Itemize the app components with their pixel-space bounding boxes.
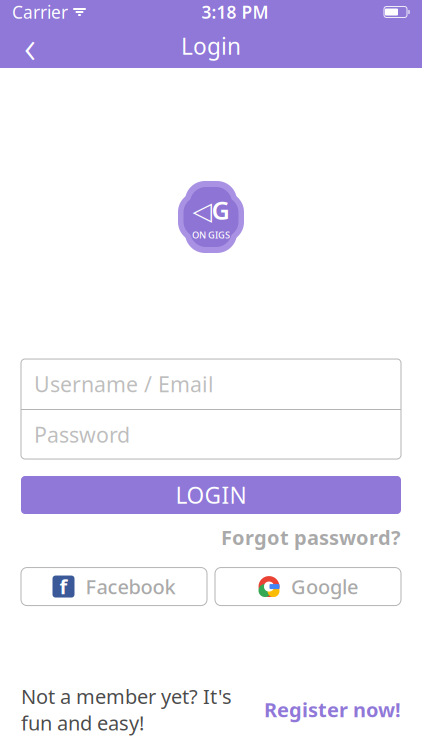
staticText: Forgot password? bbox=[221, 524, 401, 551]
staticText: f bbox=[59, 573, 67, 600]
staticText: Not a member yet? It's fun and easy! bbox=[21, 683, 232, 736]
staticText: Login bbox=[181, 31, 241, 61]
staticText: ◁G bbox=[192, 193, 229, 227]
staticText: Facebook bbox=[85, 573, 175, 600]
staticText: Password bbox=[34, 420, 130, 449]
button[interactable]: f bbox=[21, 568, 207, 606]
button[interactable]: Forgot password? bbox=[221, 524, 401, 551]
staticText: Carrier bbox=[12, 0, 68, 23]
staticText: Google bbox=[291, 573, 358, 600]
staticText: ON GIGS bbox=[192, 229, 230, 241]
button[interactable]: LOGIN bbox=[21, 476, 401, 514]
staticText: LOGIN bbox=[175, 480, 246, 510]
staticText: Register now! bbox=[264, 696, 401, 723]
staticText: ‹ bbox=[24, 16, 36, 76]
button[interactable]: Register now! bbox=[264, 696, 401, 723]
staticText: Username / Email bbox=[34, 370, 214, 398]
button[interactable]: Back bbox=[8, 24, 52, 68]
staticText: 3:18 PM bbox=[201, 0, 268, 23]
button[interactable]: Google bbox=[215, 568, 401, 606]
